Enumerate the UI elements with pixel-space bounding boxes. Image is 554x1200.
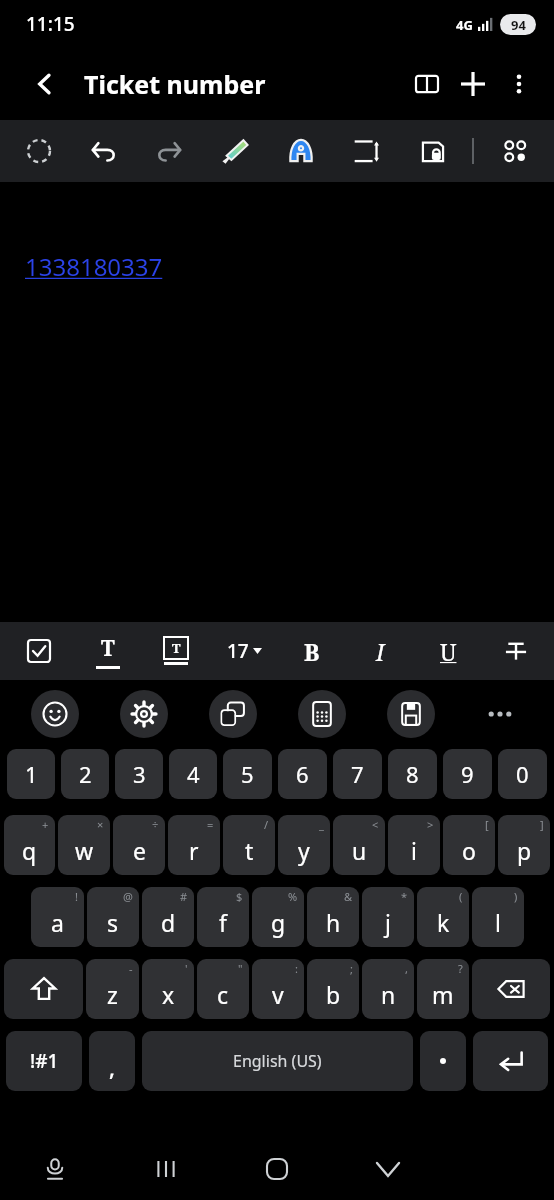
button[interactable]: ! — [31, 887, 84, 947]
button[interactable]: Text style — [268, 120, 334, 182]
staticText: ' — [185, 961, 188, 976]
staticText: ] — [540, 817, 544, 832]
staticText: 4 — [187, 759, 200, 789]
button[interactable]: Highlight color — [142, 622, 210, 680]
button[interactable]: @ — [87, 887, 139, 947]
button[interactable]: Recent apps — [110, 1138, 221, 1200]
button[interactable]: : — [252, 959, 304, 1019]
button[interactable]: _ — [278, 815, 330, 875]
button[interactable]: Strikethrough — [482, 622, 550, 680]
staticText: & — [344, 889, 353, 904]
button[interactable]: " — [197, 959, 249, 1019]
button[interactable]: 0 — [498, 749, 547, 799]
button[interactable]: % — [252, 887, 304, 947]
button[interactable]: 9 — [443, 749, 492, 799]
staticText: = — [207, 817, 214, 832]
staticText: , — [109, 1052, 116, 1082]
button[interactable]: ( — [417, 887, 469, 947]
button[interactable]: !#1 — [6, 1031, 82, 1091]
button[interactable]: Emoji — [31, 690, 79, 738]
button[interactable]: $ — [197, 887, 249, 947]
button[interactable]: 4 — [169, 749, 217, 799]
button[interactable]: × — [58, 815, 110, 875]
staticText: l — [495, 907, 501, 938]
button[interactable]: ) — [472, 887, 524, 947]
staticText: i — [411, 835, 417, 866]
button[interactable]: Backspace — [472, 959, 550, 1019]
staticText: 3 — [133, 759, 146, 789]
button[interactable]: Add — [450, 61, 496, 107]
button[interactable] — [420, 1031, 466, 1091]
button[interactable]: / — [223, 815, 275, 875]
button[interactable]: , — [362, 959, 414, 1019]
button[interactable]: Voice input — [0, 1138, 110, 1200]
button[interactable]: ' — [142, 959, 194, 1019]
button[interactable]: Hide keyboard — [332, 1138, 443, 1200]
button[interactable]: = — [168, 815, 220, 875]
staticText: ÷ — [152, 817, 159, 832]
button[interactable]: View mode — [404, 61, 450, 107]
staticText: n — [381, 979, 396, 1010]
button[interactable]: Highlighter — [202, 120, 268, 182]
button[interactable]: & — [307, 887, 359, 947]
button[interactable]: ÷ — [113, 815, 165, 875]
button[interactable]: Paragraph spacing — [334, 120, 400, 182]
button[interactable]: 7 — [333, 749, 382, 799]
button[interactable]: Checklist — [4, 622, 73, 680]
button[interactable]: Translate — [209, 690, 257, 738]
button[interactable]: More options — [496, 61, 542, 107]
button[interactable]: - — [86, 959, 139, 1019]
button[interactable]: Back — [26, 65, 64, 103]
button[interactable]: B — [278, 622, 346, 680]
button[interactable]: Text color — [73, 622, 142, 680]
button[interactable]: Home — [221, 1138, 332, 1200]
staticText: x — [162, 979, 175, 1010]
staticText: 9 — [461, 759, 474, 789]
button[interactable]: ; — [307, 959, 359, 1019]
button[interactable]: Settings — [482, 120, 548, 182]
staticText: y — [298, 835, 310, 866]
button[interactable]: Redo — [136, 120, 202, 182]
staticText: [ — [485, 817, 489, 832]
button[interactable]: 3 — [115, 749, 163, 799]
staticText: j — [385, 907, 391, 938]
staticText: a — [51, 907, 64, 938]
staticText: _ — [319, 817, 324, 832]
button[interactable]: 1 — [7, 749, 55, 799]
button[interactable]: English (US) — [142, 1031, 413, 1091]
staticText: o — [462, 835, 476, 866]
button[interactable]: Clipboard — [387, 690, 435, 738]
button[interactable]: I — [346, 622, 414, 680]
button[interactable]: > — [388, 815, 440, 875]
staticText: ( — [459, 889, 463, 904]
staticText: z — [107, 979, 118, 1010]
button[interactable]: Keyboard settings — [120, 690, 168, 738]
staticText: f — [219, 907, 227, 938]
staticText: 6 — [296, 759, 309, 789]
button[interactable]: * — [362, 887, 414, 947]
button[interactable]: Selection — [6, 120, 71, 182]
button[interactable]: , — [89, 1031, 135, 1091]
button[interactable]: 6 — [278, 749, 327, 799]
button[interactable]: More — [455, 680, 544, 748]
button[interactable]: Number pad — [298, 690, 346, 738]
button[interactable]: ] — [498, 815, 550, 875]
staticText: 1 — [25, 759, 38, 789]
button[interactable]: + — [4, 815, 55, 875]
button[interactable]: Enter — [473, 1031, 548, 1091]
button[interactable]: Lock note — [400, 120, 466, 182]
button[interactable]: U — [414, 622, 482, 680]
button[interactable]: [ — [443, 815, 495, 875]
button[interactable]: ? — [417, 959, 469, 1019]
button[interactable]: < — [333, 815, 385, 875]
staticText: u — [352, 835, 367, 866]
button[interactable]: Undo — [71, 120, 136, 182]
button[interactable]: 8 — [388, 749, 437, 799]
button[interactable]: 2 — [61, 749, 109, 799]
staticText: 11:15 — [26, 11, 75, 37]
button[interactable]: 17 — [210, 622, 278, 680]
button[interactable]: # — [142, 887, 194, 947]
button[interactable]: 5 — [223, 749, 272, 799]
staticText: I — [376, 636, 385, 667]
button[interactable]: Shift — [4, 959, 83, 1019]
